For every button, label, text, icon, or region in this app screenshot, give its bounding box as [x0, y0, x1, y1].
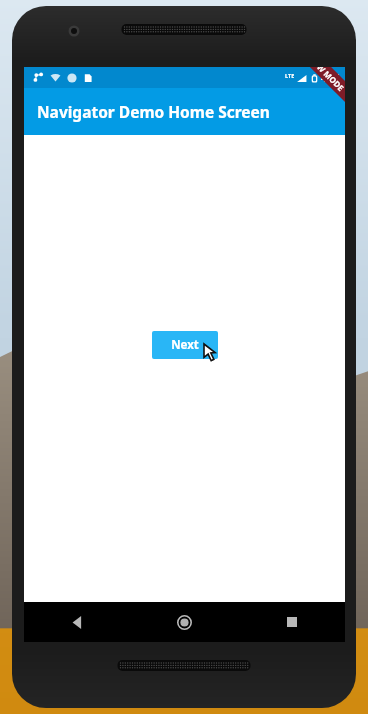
button[interactable]: Back: [24, 602, 131, 642]
staticText: SLOW MODE: [304, 67, 345, 93]
button[interactable]: Next: [152, 331, 218, 359]
button[interactable]: Home: [131, 602, 238, 642]
button[interactable]: Recents: [238, 602, 345, 642]
staticText: LTE: [285, 72, 295, 79]
staticText: Navigator Demo Home Screen: [37, 101, 270, 122]
staticText: Next: [171, 337, 199, 353]
staticText: 4:31: [321, 71, 341, 85]
